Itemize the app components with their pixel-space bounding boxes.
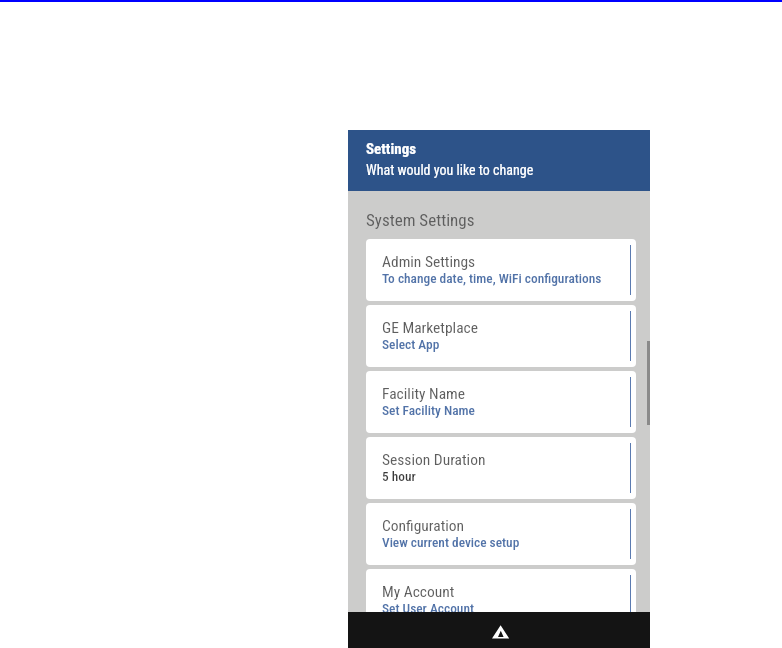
staticText: Select App (382, 337, 440, 353)
staticText: To change date, time, WiFi configuration… (382, 271, 602, 287)
button[interactable]: Admin Settings (366, 239, 636, 301)
staticText: Settings (366, 140, 416, 158)
staticText: Set User Account (382, 601, 474, 617)
button[interactable]: Session Duration (366, 437, 636, 499)
staticText: Admin Settings (382, 253, 476, 271)
staticText: My Account (382, 583, 455, 601)
staticText: View current device setup (382, 535, 520, 551)
staticText: 5 hour (382, 469, 416, 485)
staticText: Configuration (382, 517, 465, 535)
staticText: Set Facility Name (382, 403, 475, 419)
staticText: Facility Name (382, 385, 466, 403)
button[interactable]: My Account (366, 569, 636, 631)
staticText: System Settings (366, 210, 475, 230)
staticText: Session Duration (382, 451, 486, 469)
button[interactable]: GE Marketplace (366, 305, 636, 367)
staticText: GE Marketplace (382, 319, 479, 337)
staticText: What would you like to change (366, 162, 534, 178)
button[interactable]: Configuration (366, 503, 636, 565)
button[interactable]: Back (488, 621, 510, 639)
button[interactable]: Facility Name (366, 371, 636, 433)
